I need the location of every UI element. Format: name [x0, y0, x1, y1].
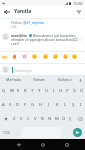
button[interactable]: C [25, 113, 32, 125]
staticText: C [27, 116, 30, 122]
button[interactable]: B [39, 113, 46, 125]
staticText: A [2, 102, 5, 108]
button[interactable]: Emoji reaction [70, 52, 79, 61]
button[interactable]: Compose tweet [74, 7, 84, 17]
button[interactable]: W [8, 85, 15, 97]
button[interactable]: Y [36, 85, 43, 97]
staticText: W [10, 88, 14, 94]
staticText: Follow [11, 20, 23, 25]
button[interactable]: Back [1, 6, 12, 17]
button[interactable]: Send [70, 126, 85, 139]
staticText: Kullanıcı [58, 77, 72, 82]
button[interactable]: F [21, 99, 29, 111]
button[interactable]: , [13, 127, 22, 138]
button[interactable]: Backspace [74, 113, 85, 125]
button[interactable]: D [14, 99, 21, 111]
staticText: R [24, 88, 27, 94]
staticText: Y [38, 88, 41, 94]
staticText: . [65, 130, 66, 135]
staticText: F [24, 102, 27, 108]
button[interactable]: S [7, 99, 14, 111]
button[interactable]: Emoji reaction [20, 52, 29, 61]
staticText: Q [2, 88, 6, 94]
staticText: H [39, 102, 43, 108]
button[interactable]: O [57, 85, 64, 97]
staticText: acoriklite [11, 33, 28, 38]
staticText: P [66, 88, 69, 94]
staticText: Yanıtını yaz [14, 68, 32, 73]
button[interactable]: T [29, 85, 36, 97]
staticText: Ç [69, 116, 72, 122]
button[interactable]: Home [37, 139, 48, 150]
button[interactable]: Tamam [26, 75, 52, 84]
button[interactable]: I [77, 99, 85, 111]
button[interactable]: J [45, 99, 53, 111]
button[interactable]: Kullanıcı [52, 75, 78, 84]
staticText: E [17, 88, 20, 94]
staticText: 10:08 [73, 1, 83, 6]
button[interactable]: N [46, 113, 53, 125]
button[interactable]: Back [13, 139, 24, 150]
button[interactable]: Emoji reaction [0, 52, 9, 61]
staticText: Ü [80, 88, 84, 94]
staticText: Ş [72, 102, 75, 108]
button[interactable]: R [22, 85, 29, 97]
staticText: G [31, 102, 35, 108]
staticText: 2dk [11, 25, 17, 29]
staticText: L [64, 102, 67, 108]
button[interactable]: Z [11, 113, 18, 125]
staticText: N [48, 116, 52, 122]
staticText: Yanıtla [14, 8, 32, 15]
button[interactable]: K [53, 99, 61, 111]
button[interactable]: Emoji reaction [61, 52, 70, 61]
button[interactable]: U [43, 85, 50, 97]
staticText: ?123 [3, 131, 10, 135]
button[interactable]: X [18, 113, 25, 125]
button[interactable]: Ö [60, 113, 67, 125]
button[interactable]: M [53, 113, 60, 125]
staticText: V [34, 116, 37, 122]
staticText: J [48, 102, 50, 108]
button[interactable]: E [15, 85, 22, 97]
staticText: Merhaba [6, 77, 21, 82]
button[interactable]: G [29, 99, 37, 111]
button[interactable]: A [0, 99, 7, 111]
button[interactable]: Emoji reaction [51, 52, 60, 61]
button[interactable]: Ğ [71, 85, 78, 97]
button[interactable]: Ş [69, 99, 77, 111]
button[interactable]: I [50, 85, 57, 97]
button[interactable]: Ç [67, 113, 74, 125]
button[interactable]: H [37, 99, 45, 111]
staticText: T [31, 88, 34, 94]
button[interactable]: Shift [0, 113, 11, 125]
staticText: efendim ve yaptığım altcoin bonusfixed22 [11, 37, 78, 42]
button[interactable]: Recent apps [61, 139, 72, 150]
button[interactable]: Emoji reaction [10, 52, 19, 61]
staticText: Tamam [33, 77, 46, 82]
staticText: Ö [62, 116, 66, 122]
staticText: U [45, 88, 49, 94]
button[interactable]: Merhaba [0, 75, 26, 84]
staticText: I [80, 102, 82, 108]
staticText: S [9, 102, 12, 108]
staticText: @aT_mpheo [23, 20, 44, 25]
staticText: K [56, 102, 59, 108]
staticText: Ğ [73, 88, 77, 94]
staticText: I [53, 88, 55, 94]
button[interactable]: Voice input [77, 77, 83, 83]
staticText: X [20, 116, 23, 122]
staticText: O [59, 88, 63, 94]
staticText: Z [13, 116, 16, 122]
button[interactable]: Ü [78, 85, 85, 97]
button[interactable]: Emoji reaction [41, 52, 50, 61]
button[interactable]: P [64, 85, 71, 97]
button[interactable]: ?123 [0, 127, 13, 138]
button[interactable]: L [61, 99, 69, 111]
staticText: coin? [11, 41, 20, 46]
button[interactable]: Emoji reaction [30, 52, 39, 61]
button[interactable]: V [32, 113, 39, 125]
staticText: B [41, 116, 44, 122]
button[interactable]: Q [0, 85, 8, 97]
